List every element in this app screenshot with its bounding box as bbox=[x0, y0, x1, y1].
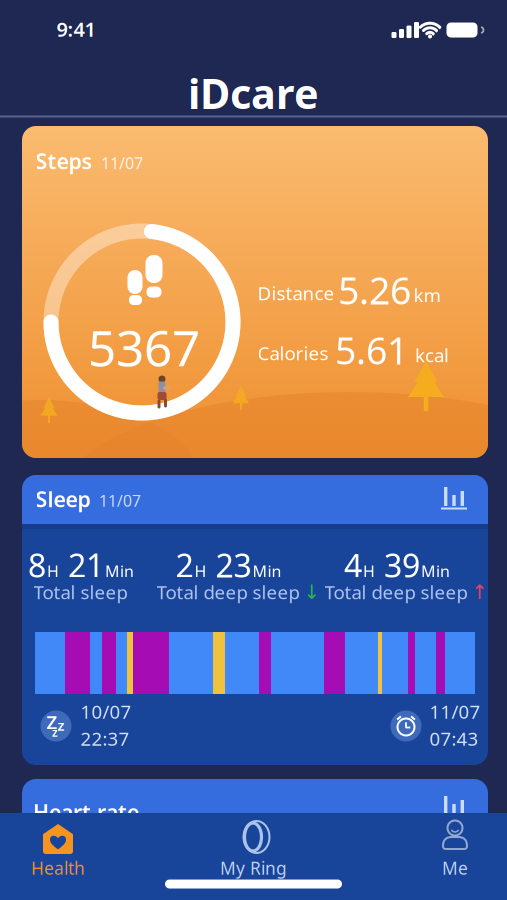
staticText: z bbox=[57, 715, 64, 735]
staticText: Total sleep bbox=[33, 580, 127, 604]
staticText: H bbox=[194, 561, 206, 582]
staticText: 22:37 bbox=[80, 726, 129, 751]
staticText: Steps bbox=[35, 147, 92, 175]
staticText: 5367 bbox=[88, 314, 200, 380]
staticText: Health bbox=[31, 856, 85, 879]
staticText: Sleep bbox=[35, 485, 90, 513]
staticText: z bbox=[52, 724, 58, 740]
staticText: Total deep sleep bbox=[156, 580, 299, 604]
button[interactable]: Steps bbox=[22, 126, 488, 458]
staticText: iDcare bbox=[188, 66, 319, 120]
staticText: 39 bbox=[376, 544, 420, 586]
button[interactable]: Sleep chart bbox=[442, 484, 468, 510]
staticText: 8 bbox=[28, 544, 46, 586]
staticText: Min bbox=[421, 561, 450, 582]
staticText: H bbox=[363, 561, 375, 582]
staticText: Calories bbox=[257, 341, 328, 365]
button[interactable]: Me bbox=[405, 819, 505, 885]
staticText: Min bbox=[105, 561, 134, 582]
staticText: 07:43 bbox=[429, 726, 478, 751]
staticText: Min bbox=[252, 561, 281, 582]
button[interactable]: My Ring bbox=[203, 819, 303, 885]
staticText: 5.26 bbox=[338, 265, 411, 315]
staticText: My Ring bbox=[220, 856, 287, 879]
staticText: Z bbox=[46, 710, 57, 734]
staticText: 11/07 bbox=[429, 699, 480, 724]
staticText: ↑ bbox=[471, 581, 488, 603]
staticText: 10/07 bbox=[80, 699, 131, 724]
staticText: Heart rate bbox=[33, 798, 139, 826]
staticText: 9:41 bbox=[56, 16, 95, 42]
staticText: ↓ bbox=[303, 581, 320, 603]
staticText: 5.61 bbox=[335, 325, 408, 375]
staticText: 23 bbox=[207, 544, 251, 586]
staticText: 4 bbox=[344, 544, 362, 586]
staticText: Total deep sleep bbox=[324, 580, 467, 604]
staticText: 11/07 bbox=[99, 490, 141, 511]
button[interactable]: Sleep bbox=[22, 475, 488, 765]
staticText: Me bbox=[442, 856, 468, 879]
staticText: 2 bbox=[175, 544, 193, 586]
button[interactable]: Health bbox=[8, 819, 108, 885]
staticText: Distance bbox=[257, 281, 334, 305]
staticText: kcal bbox=[415, 343, 449, 367]
staticText: 11/07 bbox=[101, 152, 143, 174]
staticText: H bbox=[47, 561, 59, 582]
button[interactable]: Heart rate bbox=[22, 779, 488, 839]
staticText: km bbox=[413, 283, 440, 307]
staticText: 21 bbox=[60, 544, 104, 586]
